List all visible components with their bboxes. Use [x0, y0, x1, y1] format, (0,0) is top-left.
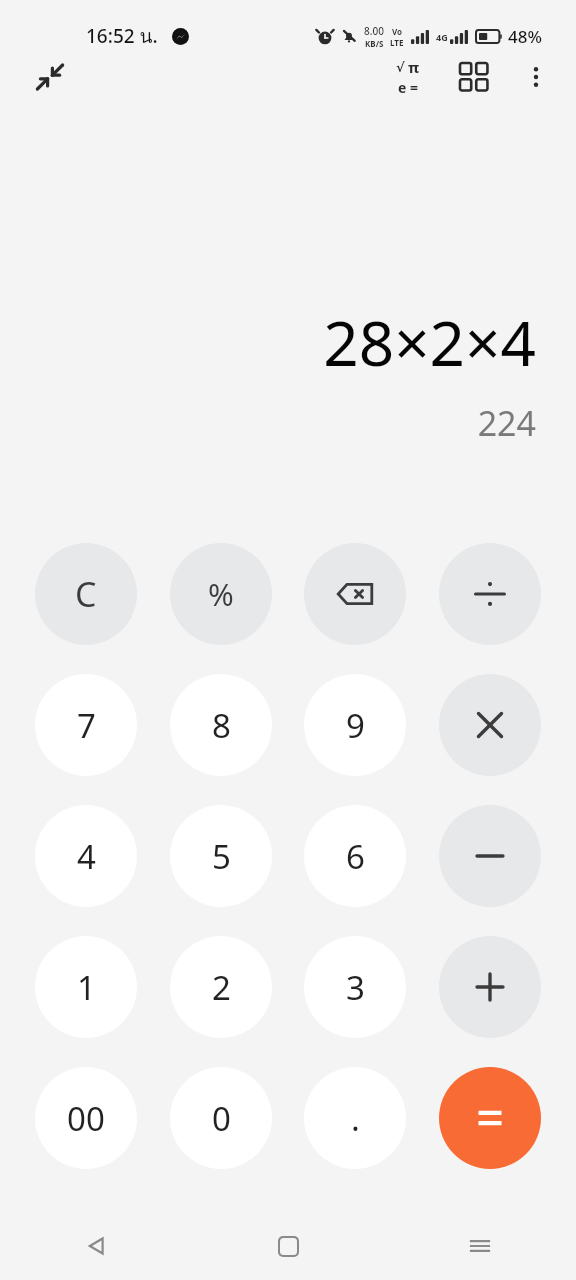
staticText: 1	[77, 965, 96, 1010]
button[interactable]: Unit converter	[446, 49, 502, 105]
staticText: KB/S	[365, 38, 384, 49]
staticText: 48%	[508, 25, 542, 48]
staticText: LTE	[390, 37, 404, 48]
button[interactable]: %	[170, 543, 272, 645]
button[interactable]: Home	[259, 1217, 317, 1275]
button[interactable]: 4	[35, 805, 137, 907]
button[interactable]: Multiply	[439, 674, 541, 776]
staticText: 8.00	[364, 24, 384, 38]
button[interactable]: 00	[35, 1067, 137, 1169]
button[interactable]: Recent apps	[451, 1217, 509, 1275]
staticText: %	[208, 573, 234, 615]
staticText: 6	[346, 834, 365, 879]
staticText: π	[408, 57, 420, 77]
button[interactable]: .	[304, 1067, 406, 1169]
staticText: 8	[212, 703, 231, 748]
staticText: 2	[212, 965, 231, 1010]
button[interactable]: 5	[170, 805, 272, 907]
button[interactable]: C	[35, 543, 137, 645]
button[interactable]: 2	[170, 936, 272, 1038]
button[interactable]: 6	[304, 805, 406, 907]
staticText: =	[410, 78, 419, 97]
button[interactable]: Back	[67, 1217, 125, 1275]
staticText: 224	[477, 400, 536, 446]
button[interactable]: 8	[170, 674, 272, 776]
staticText: 4	[77, 834, 96, 879]
button[interactable]: 9	[304, 674, 406, 776]
staticText: √	[396, 60, 405, 75]
staticText: 0	[212, 1096, 231, 1141]
staticText: .	[351, 1096, 360, 1141]
staticText: 16:52 น.	[86, 21, 158, 51]
button[interactable]: Collapse	[22, 49, 78, 105]
staticText: 5	[212, 834, 231, 879]
staticText: 9	[346, 703, 365, 748]
button[interactable]: 0	[170, 1067, 272, 1169]
staticText: 00	[67, 1096, 105, 1141]
button[interactable]: Divide	[439, 543, 541, 645]
staticText: e	[398, 78, 407, 97]
button[interactable]: More options	[508, 49, 564, 105]
staticText: C	[75, 571, 97, 617]
staticText: 4G	[436, 31, 448, 43]
button[interactable]: Backspace	[304, 543, 406, 645]
staticText: 3	[346, 965, 365, 1010]
button[interactable]: 7	[35, 674, 137, 776]
button[interactable]: 3	[304, 936, 406, 1038]
button[interactable]: Minus	[439, 805, 541, 907]
button[interactable]: Scientific mode	[380, 49, 436, 105]
button[interactable]: Equals	[439, 1067, 541, 1169]
button[interactable]: Plus	[439, 936, 541, 1038]
staticText: Vo	[392, 26, 403, 37]
staticText: 28×2×4	[323, 300, 536, 384]
button[interactable]: 1	[35, 936, 137, 1038]
staticText: 7	[77, 703, 96, 748]
